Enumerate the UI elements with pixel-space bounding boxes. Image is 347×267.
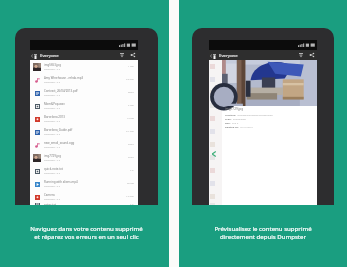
staticText: Dumpster - 9 d — [44, 185, 61, 188]
staticText: img7729.jpg — [44, 154, 61, 158]
staticText: 279 K — [232, 121, 239, 124]
staticText: 30 MB — [127, 182, 134, 185]
staticText: 340 K — [128, 143, 134, 146]
staticText: Dumpster - 3 d — [44, 81, 61, 84]
staticText: Prévisualisez le contenu supprimé direct… — [214, 224, 312, 240]
staticText: Dumpster - 4 d — [44, 94, 61, 97]
staticText: 2 MB — [128, 104, 134, 107]
staticText: 14 MB — [127, 117, 134, 120]
staticText: 4.5 MB — [126, 78, 134, 81]
staticText: 880 K — [128, 91, 134, 94]
staticText: Mom&Pop.wav — [44, 102, 65, 106]
staticText: Everyone — [40, 52, 59, 58]
staticText: Running with aliens.mp4 — [44, 180, 78, 184]
staticText: Dumpster - 9 d — [44, 198, 61, 201]
staticText: image/jpeg — [233, 117, 246, 120]
staticText: quick-note.txt — [44, 167, 63, 171]
staticText: img7729.jpg — [225, 107, 244, 111]
staticText: Dumpster - 7 d — [44, 146, 61, 149]
button[interactable]: img5653.jpg — [30, 60, 138, 73]
staticText: Camera — [44, 193, 55, 197]
button[interactable]: Camera — [30, 190, 138, 203]
staticText: Amy Winehouse - rehab.mp3 — [44, 76, 84, 80]
staticText: 4 K — [130, 203, 134, 205]
staticText: Dumpster - 8 d — [44, 172, 61, 175]
button[interactable]: img7729.jpg — [30, 151, 138, 164]
button[interactable]: new_email_sound.ogg — [30, 138, 138, 151]
button[interactable]: Running with aliens.mp4 — [30, 177, 138, 190]
button[interactable]: Dumpster — [33, 53, 37, 60]
button[interactable]: Contract_26/04/2013.pdf — [30, 86, 138, 99]
button[interactable]: Filter — [118, 50, 126, 60]
staticText: 7 K — [130, 169, 134, 172]
button[interactable]: Dumpster — [212, 53, 216, 60]
staticText: Dumpster - 3 d — [44, 68, 61, 71]
button[interactable]: Barcelona 2013 — [30, 112, 138, 125]
button[interactable]: Mom&Pop.wav — [30, 99, 138, 112]
button[interactable]: Barcelona_Guide.pdf — [30, 125, 138, 138]
staticText: Everyone — [219, 52, 238, 58]
staticText: new_email_sound.ogg — [44, 141, 75, 145]
button[interactable]: Filter — [297, 50, 305, 60]
staticText: Size: — [225, 121, 231, 124]
staticText: Naviguez dans votre contenu supprimé et … — [30, 224, 143, 240]
staticText: 1 MB — [128, 65, 134, 68]
staticText: 1.2 MB — [126, 195, 134, 198]
staticText: Type: — [225, 117, 232, 120]
button[interactable]: quick-note.txt — [30, 164, 138, 177]
staticText: Barcelona_Guide.pdf — [44, 128, 73, 132]
staticText: Barcelona 2013 — [44, 115, 65, 119]
staticText: 4.1 MB — [126, 130, 134, 133]
button[interactable]: Share — [129, 50, 137, 60]
button[interactable]: Back — [210, 150, 218, 158]
staticText: /storage/emulated/0/Download — [237, 113, 273, 116]
staticText: Dumpster - 6 d — [44, 120, 61, 123]
button[interactable]: Share — [308, 50, 316, 60]
button[interactable]: notes.txt — [30, 203, 138, 205]
button[interactable]: Amy Winehouse - rehab.mp3 — [30, 73, 138, 86]
staticText: notes.txt — [44, 203, 56, 205]
staticText: Dumpster - 7 d — [44, 159, 61, 162]
staticText: img5653.jpg — [44, 63, 61, 67]
staticText: Dumpster - 5 d — [44, 107, 61, 110]
staticText: 279 K — [128, 156, 134, 159]
staticText: 16/11/2013 — [240, 125, 253, 128]
staticText: Dumpster - 6 d — [44, 133, 61, 136]
staticText: Deleted on: — [225, 125, 239, 128]
staticText: Contract_26/04/2013.pdf — [44, 89, 78, 93]
staticText: Location: — [225, 113, 236, 116]
